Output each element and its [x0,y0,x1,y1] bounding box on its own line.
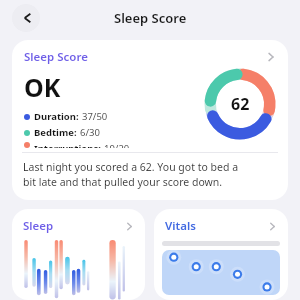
staticText: 6/30 [80,126,100,139]
staticText: Interruptions: [34,142,104,148]
staticText: 19/20 [104,142,130,148]
button[interactable]: Sleep [12,209,145,300]
staticText: Sleep [23,218,54,234]
staticText: Sleep Score [114,9,187,27]
button[interactable]: Sleep Score [12,40,288,200]
staticText: 37/50 [82,110,108,123]
staticText: Sleep Score [24,49,88,65]
button[interactable]: Vitals [154,209,288,300]
button[interactable]: Back [12,4,40,32]
staticText: Duration: [34,110,82,123]
staticText: Bedtime: [34,126,80,139]
staticText: 62 [231,93,250,115]
staticText: Vitals [165,218,196,234]
staticText: OK [24,70,61,104]
staticText: Last night you scored a 62. You got to b… [23,160,239,189]
